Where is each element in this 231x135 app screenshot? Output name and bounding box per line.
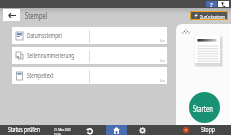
button[interactable]: Stempeltext	[12, 67, 167, 84]
staticText: Stempel	[25, 10, 47, 21]
button[interactable]: Settings	[133, 125, 151, 135]
staticText: Aus	[160, 38, 165, 43]
button[interactable]: Zurücksetzen	[190, 11, 228, 20]
button[interactable]: Starten	[189, 92, 220, 123]
button[interactable]: Back	[80, 125, 98, 135]
button[interactable]: Seitennummerierung	[12, 47, 167, 64]
button[interactable]: Status prüfen	[7, 125, 52, 135]
staticText: Aus	[160, 58, 165, 63]
button[interactable]: Back	[3, 9, 20, 21]
staticText: 15:39	[54, 132, 60, 135]
staticText: Zurücksetzen	[200, 13, 225, 20]
staticText: Seitennummerierung	[27, 51, 74, 60]
staticText: Datumsstempel	[27, 31, 62, 40]
staticText: 21. März 2020	[54, 127, 71, 132]
button[interactable]: Help	[206, 1, 217, 7]
button[interactable]: Phone	[218, 1, 229, 7]
button[interactable]: Datumsstempel	[12, 27, 167, 44]
staticText: Stopp	[201, 125, 215, 135]
staticText: Aus	[160, 78, 165, 83]
button[interactable]: Home	[106, 125, 127, 135]
staticText: Status prüfen	[8, 125, 40, 135]
button[interactable]: Stopp	[183, 125, 223, 135]
staticText: ?	[210, 1, 213, 7]
staticText: Starten	[193, 103, 213, 114]
staticText: Stempeltext	[27, 71, 54, 80]
